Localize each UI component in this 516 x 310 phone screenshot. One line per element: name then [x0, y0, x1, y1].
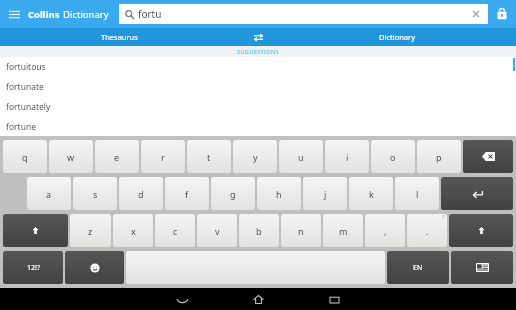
staticText: i: [346, 151, 349, 163]
staticText: e: [114, 151, 120, 163]
staticText: SUGGESTIONS: [237, 48, 279, 55]
button[interactable]: p: [417, 140, 461, 173]
staticText: j: [324, 188, 327, 200]
button[interactable]: c: [155, 214, 195, 247]
staticText: EN: [413, 263, 423, 273]
staticText: ,: [384, 225, 387, 237]
button[interactable]: b: [239, 214, 279, 247]
button[interactable]: .: [407, 214, 447, 247]
staticText: v: [215, 225, 220, 237]
staticText: s: [93, 188, 98, 200]
button[interactable]: o: [371, 140, 415, 173]
button[interactable]: f: [165, 177, 209, 210]
staticText: Collins: [28, 8, 60, 21]
staticText: a: [46, 188, 52, 200]
staticText: u: [298, 151, 304, 163]
button[interactable]: r: [141, 140, 185, 173]
button[interactable]: q: [3, 140, 47, 173]
button[interactable]: g: [211, 177, 255, 210]
staticText: k: [369, 188, 374, 200]
button[interactable]: Swap dictionaries: [238, 28, 278, 46]
button[interactable]: Emoji: [65, 251, 124, 284]
staticText: fortu: [138, 7, 162, 21]
staticText: Dictionary: [63, 8, 109, 21]
staticText: t: [207, 151, 211, 163]
staticText: fortunately: [6, 101, 51, 113]
button[interactable]: Space: [126, 251, 385, 284]
button[interactable]: s: [73, 177, 117, 210]
button[interactable]: EN: [387, 251, 449, 284]
button[interactable]: l: [395, 177, 439, 210]
button[interactable]: ,: [365, 214, 405, 247]
button[interactable]: Shift: [449, 214, 513, 247]
button[interactable]: x: [113, 214, 153, 247]
button[interactable]: Recent apps: [317, 288, 351, 310]
staticText: .: [426, 225, 429, 237]
staticText: g: [230, 188, 236, 200]
button[interactable]: n: [281, 214, 321, 247]
staticText: 12!?: [27, 263, 40, 273]
button[interactable]: Keyboard layout: [451, 251, 513, 284]
staticText: w: [67, 151, 75, 163]
button[interactable]: fortunate: [0, 77, 516, 97]
button[interactable]: 12!?: [3, 251, 63, 284]
button[interactable]: fortuitous: [0, 57, 516, 77]
button[interactable]: Thesaurus: [0, 28, 238, 46]
button[interactable]: Shift: [3, 214, 68, 247]
button[interactable]: Backspace: [463, 140, 513, 173]
staticText: Dictionary: [379, 32, 415, 42]
button[interactable]: j: [303, 177, 347, 210]
button[interactable]: Clear search: [467, 5, 485, 23]
button[interactable]: Home: [241, 288, 275, 310]
staticText: c: [173, 225, 178, 237]
staticText: fortune: [6, 121, 36, 133]
button[interactable]: e: [95, 140, 139, 173]
staticText: q: [22, 151, 28, 163]
button[interactable]: z: [70, 214, 111, 247]
staticText: y: [253, 151, 258, 163]
staticText: r: [161, 151, 165, 163]
button[interactable]: y: [233, 140, 277, 173]
staticText: fortunate: [6, 81, 44, 93]
button[interactable]: Enter: [441, 177, 513, 210]
button[interactable]: i: [325, 140, 369, 173]
staticText: p: [436, 151, 442, 163]
staticText: z: [88, 225, 93, 237]
staticText: fortuitous: [6, 61, 46, 73]
staticText: m: [339, 225, 348, 237]
button[interactable]: w: [49, 140, 93, 173]
staticText: h: [276, 188, 282, 200]
button[interactable]: Shop: [488, 0, 516, 28]
button[interactable]: Dictionary: [278, 28, 516, 46]
staticText: Thesaurus: [101, 32, 138, 42]
button[interactable]: m: [323, 214, 363, 247]
staticText: o: [390, 151, 396, 163]
button[interactable]: u: [279, 140, 323, 173]
staticText: x: [131, 225, 136, 237]
button[interactable]: t: [187, 140, 231, 173]
staticText: b: [256, 225, 262, 237]
staticText: f: [185, 188, 189, 200]
button[interactable]: Back: [165, 288, 199, 310]
button[interactable]: d: [119, 177, 163, 210]
button[interactable]: k: [349, 177, 393, 210]
button[interactable]: a: [27, 177, 71, 210]
button[interactable]: v: [197, 214, 237, 247]
button[interactable]: Open navigation menu: [0, 0, 28, 28]
staticText: d: [138, 188, 144, 200]
staticText: ♪: [442, 214, 445, 219]
staticText: l: [416, 188, 419, 200]
button[interactable]: fortunately: [0, 97, 516, 117]
button[interactable]: fortune: [0, 117, 516, 136]
button[interactable]: h: [257, 177, 301, 210]
button[interactable]: fortu: [119, 4, 488, 24]
staticText: n: [298, 225, 304, 237]
